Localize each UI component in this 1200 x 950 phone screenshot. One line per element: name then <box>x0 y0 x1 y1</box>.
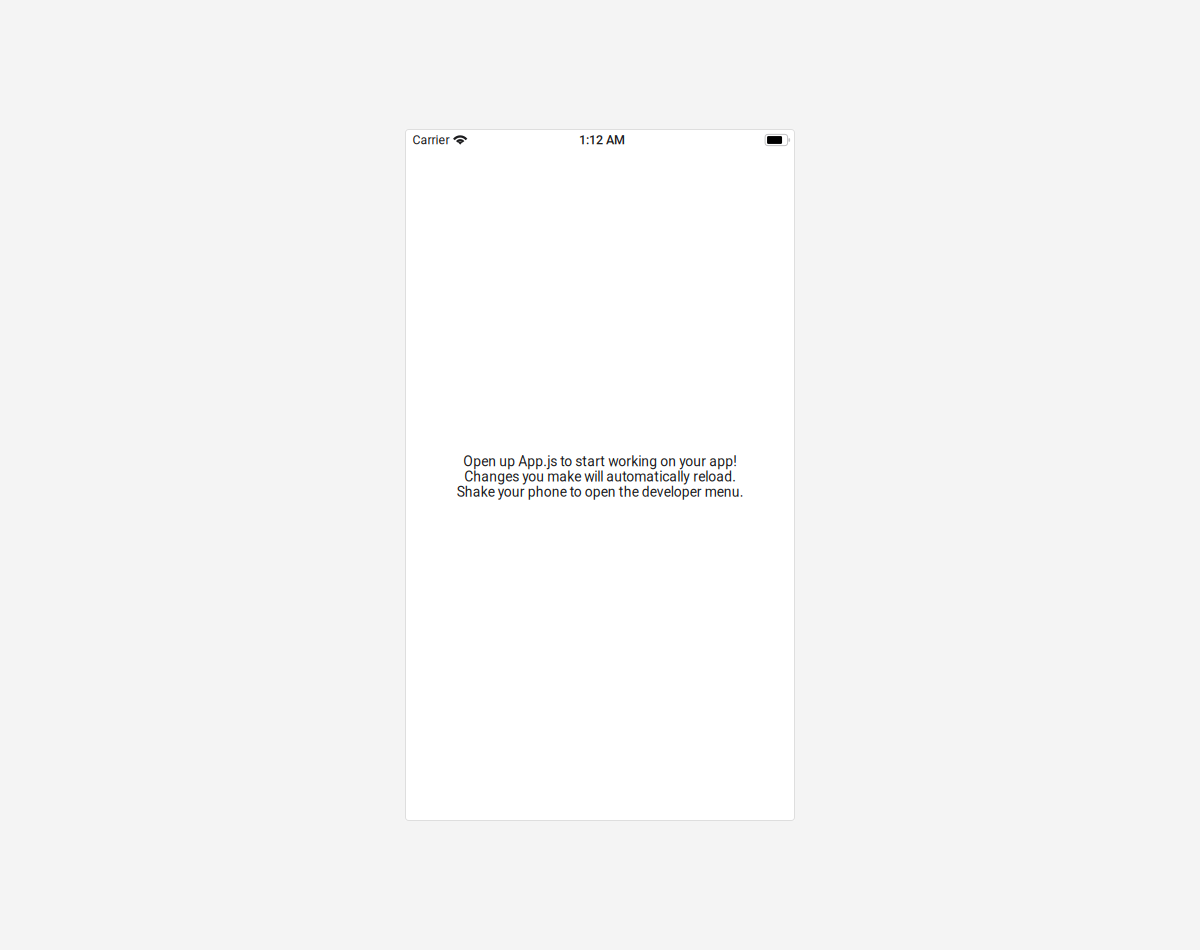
staticText: Open up App.js to start working on your … <box>456 453 743 500</box>
staticText: Carrier <box>412 133 449 147</box>
staticText: 1:12 AM <box>579 133 625 147</box>
